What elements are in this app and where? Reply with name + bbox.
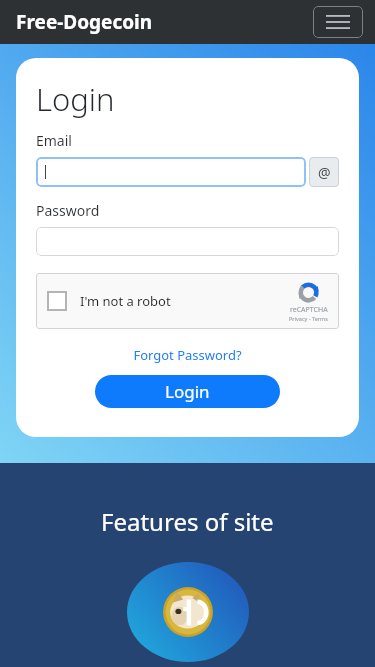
staticText: @ xyxy=(318,163,331,182)
button[interactable] xyxy=(36,227,339,256)
staticText: Forgot Password? xyxy=(133,346,242,364)
staticText: Privacy - Terms xyxy=(289,315,328,322)
staticText: Features of site xyxy=(101,505,274,538)
staticText: Login xyxy=(36,78,115,120)
staticText: reCAPTCHA xyxy=(290,305,328,315)
staticText: I'm not a robot xyxy=(80,292,171,310)
button[interactable]: Email domain xyxy=(309,157,339,187)
staticText: Login xyxy=(165,380,210,403)
staticText: Email xyxy=(36,131,72,150)
button[interactable] xyxy=(36,157,306,187)
button[interactable]: Forgot Password? xyxy=(36,346,339,364)
staticText: Free-Dogecoin xyxy=(16,9,153,35)
button[interactable]: Login xyxy=(95,375,280,408)
button[interactable]: I'm not a robot xyxy=(36,273,339,329)
button[interactable]: Open navigation menu xyxy=(313,6,363,38)
staticText: Password xyxy=(36,201,100,220)
